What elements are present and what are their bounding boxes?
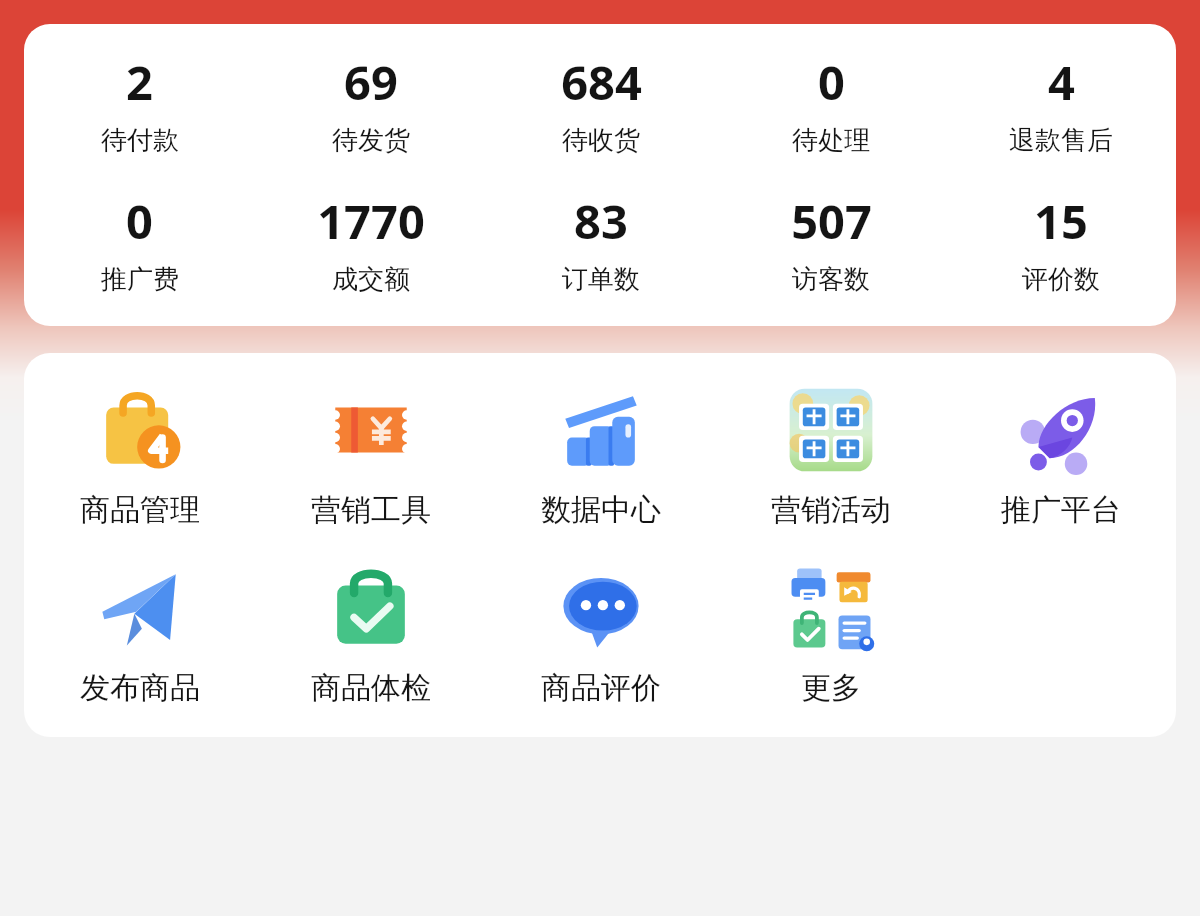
button[interactable]: 15 <box>946 187 1176 298</box>
staticText: 83 <box>574 189 628 253</box>
staticText: 发布商品 <box>80 669 200 707</box>
button[interactable]: 数据中心 <box>486 383 716 529</box>
button[interactable]: 1770 <box>255 187 486 298</box>
staticText: 退款售后 <box>1009 124 1113 157</box>
staticText: 1770 <box>317 189 425 253</box>
staticText: 更多 <box>801 669 861 707</box>
staticText: 15 <box>1034 189 1088 253</box>
button[interactable]: 推广平台 <box>946 383 1176 529</box>
staticText: 访客数 <box>792 263 870 296</box>
staticText: 待收货 <box>562 124 640 157</box>
staticText: 69 <box>344 50 398 114</box>
staticText: 推广平台 <box>1001 491 1121 529</box>
staticText: 4 <box>1048 50 1075 114</box>
button[interactable]: 69 <box>255 48 486 159</box>
button[interactable]: 83 <box>486 187 716 298</box>
staticText: 商品体检 <box>311 669 431 707</box>
staticText: 待发货 <box>332 124 410 157</box>
button[interactable]: 0 <box>716 48 946 159</box>
staticText: 订单数 <box>562 263 640 296</box>
button[interactable]: 商品管理 <box>24 383 255 529</box>
button[interactable]: 营销活动 <box>716 383 946 529</box>
button[interactable]: 营销工具 <box>255 383 486 529</box>
staticText: 684 <box>561 50 642 114</box>
button[interactable]: 684 <box>486 48 716 159</box>
staticText: 推广费 <box>101 263 179 296</box>
staticText: 商品评价 <box>541 669 661 707</box>
staticText: 待处理 <box>792 124 870 157</box>
button[interactable]: 发布商品 <box>24 561 255 707</box>
staticText: 商品管理 <box>80 491 200 529</box>
button[interactable]: 507 <box>716 187 946 298</box>
staticText: 507 <box>791 189 872 253</box>
button[interactable]: 商品评价 <box>486 561 716 707</box>
staticText: 数据中心 <box>541 491 661 529</box>
staticText: 营销活动 <box>771 491 891 529</box>
button[interactable]: 商品体检 <box>255 561 486 707</box>
staticText: 营销工具 <box>311 491 431 529</box>
staticText: 待付款 <box>101 124 179 157</box>
staticText: 评价数 <box>1022 263 1100 296</box>
staticText: 成交额 <box>332 263 410 296</box>
button[interactable]: 4 <box>946 48 1176 159</box>
button[interactable]: 0 <box>24 187 255 298</box>
button[interactable]: 2 <box>24 48 255 159</box>
button[interactable]: 更多 <box>716 561 946 707</box>
staticText: 2 <box>126 50 153 114</box>
staticText: 0 <box>818 50 845 114</box>
staticText: 0 <box>126 189 153 253</box>
